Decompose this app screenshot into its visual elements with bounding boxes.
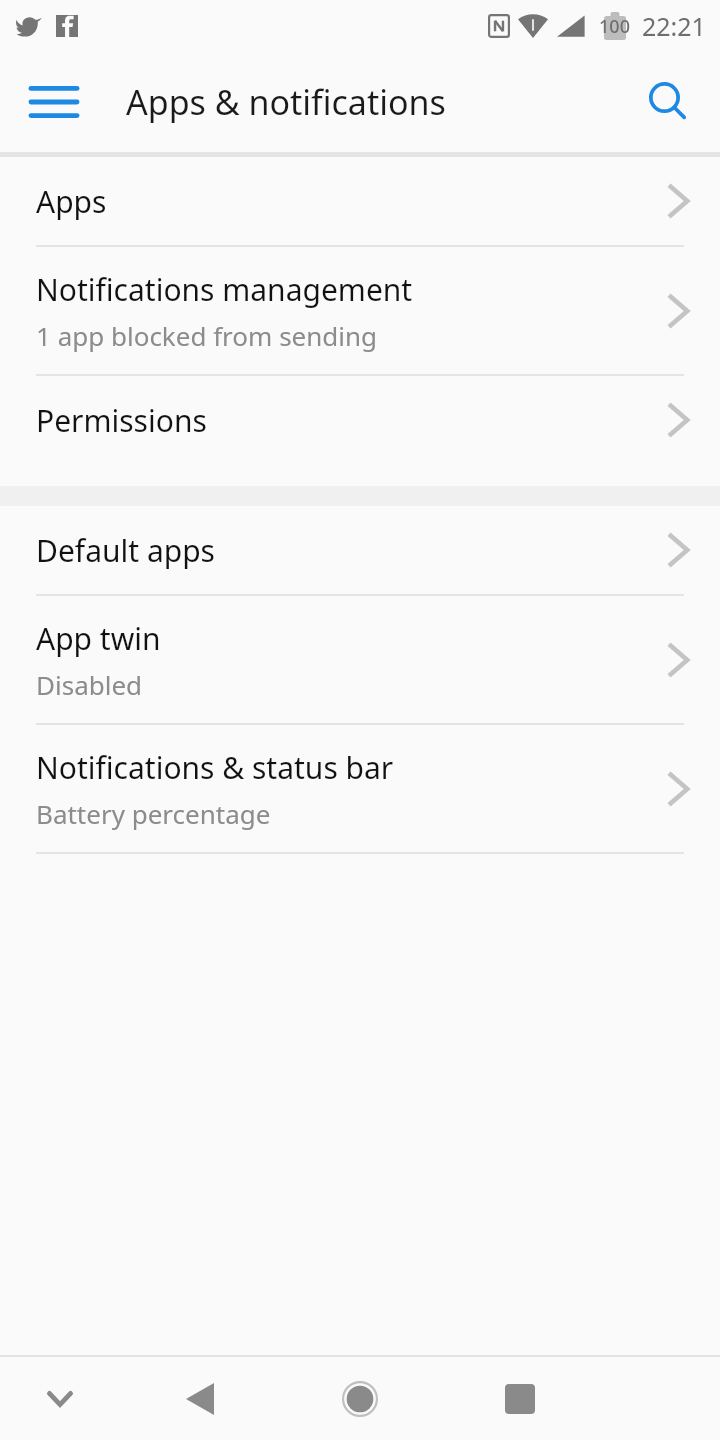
button[interactable]: Default apps [0, 506, 720, 594]
staticText: 22:21 [642, 9, 706, 43]
staticText: Notifications management [36, 269, 413, 310]
button[interactable]: Recent apps [480, 1359, 560, 1439]
button[interactable]: Back [160, 1359, 240, 1439]
button[interactable]: Search [636, 70, 700, 134]
staticText: Apps [36, 181, 107, 222]
button[interactable]: Notifications & status bar [0, 725, 720, 852]
button[interactable]: App twin [0, 596, 720, 723]
button[interactable]: Navigation menu [22, 70, 86, 134]
staticText: Disabled [36, 667, 143, 702]
staticText: Permissions [36, 400, 207, 441]
staticText: App twin [36, 618, 161, 659]
staticText: 100 [599, 14, 630, 39]
button[interactable]: Apps [0, 157, 720, 245]
button[interactable]: Permissions [0, 376, 720, 464]
button[interactable]: Hide navigation bar [20, 1359, 100, 1439]
button[interactable]: Home [320, 1359, 400, 1439]
staticText: Notifications & status bar [36, 747, 394, 788]
staticText: Default apps [36, 530, 215, 571]
staticText: 1 app blocked from sending [36, 318, 378, 353]
staticText: Battery percentage [36, 796, 271, 831]
staticText: Apps & notifications [126, 79, 446, 125]
button[interactable]: Notifications management [0, 247, 720, 374]
